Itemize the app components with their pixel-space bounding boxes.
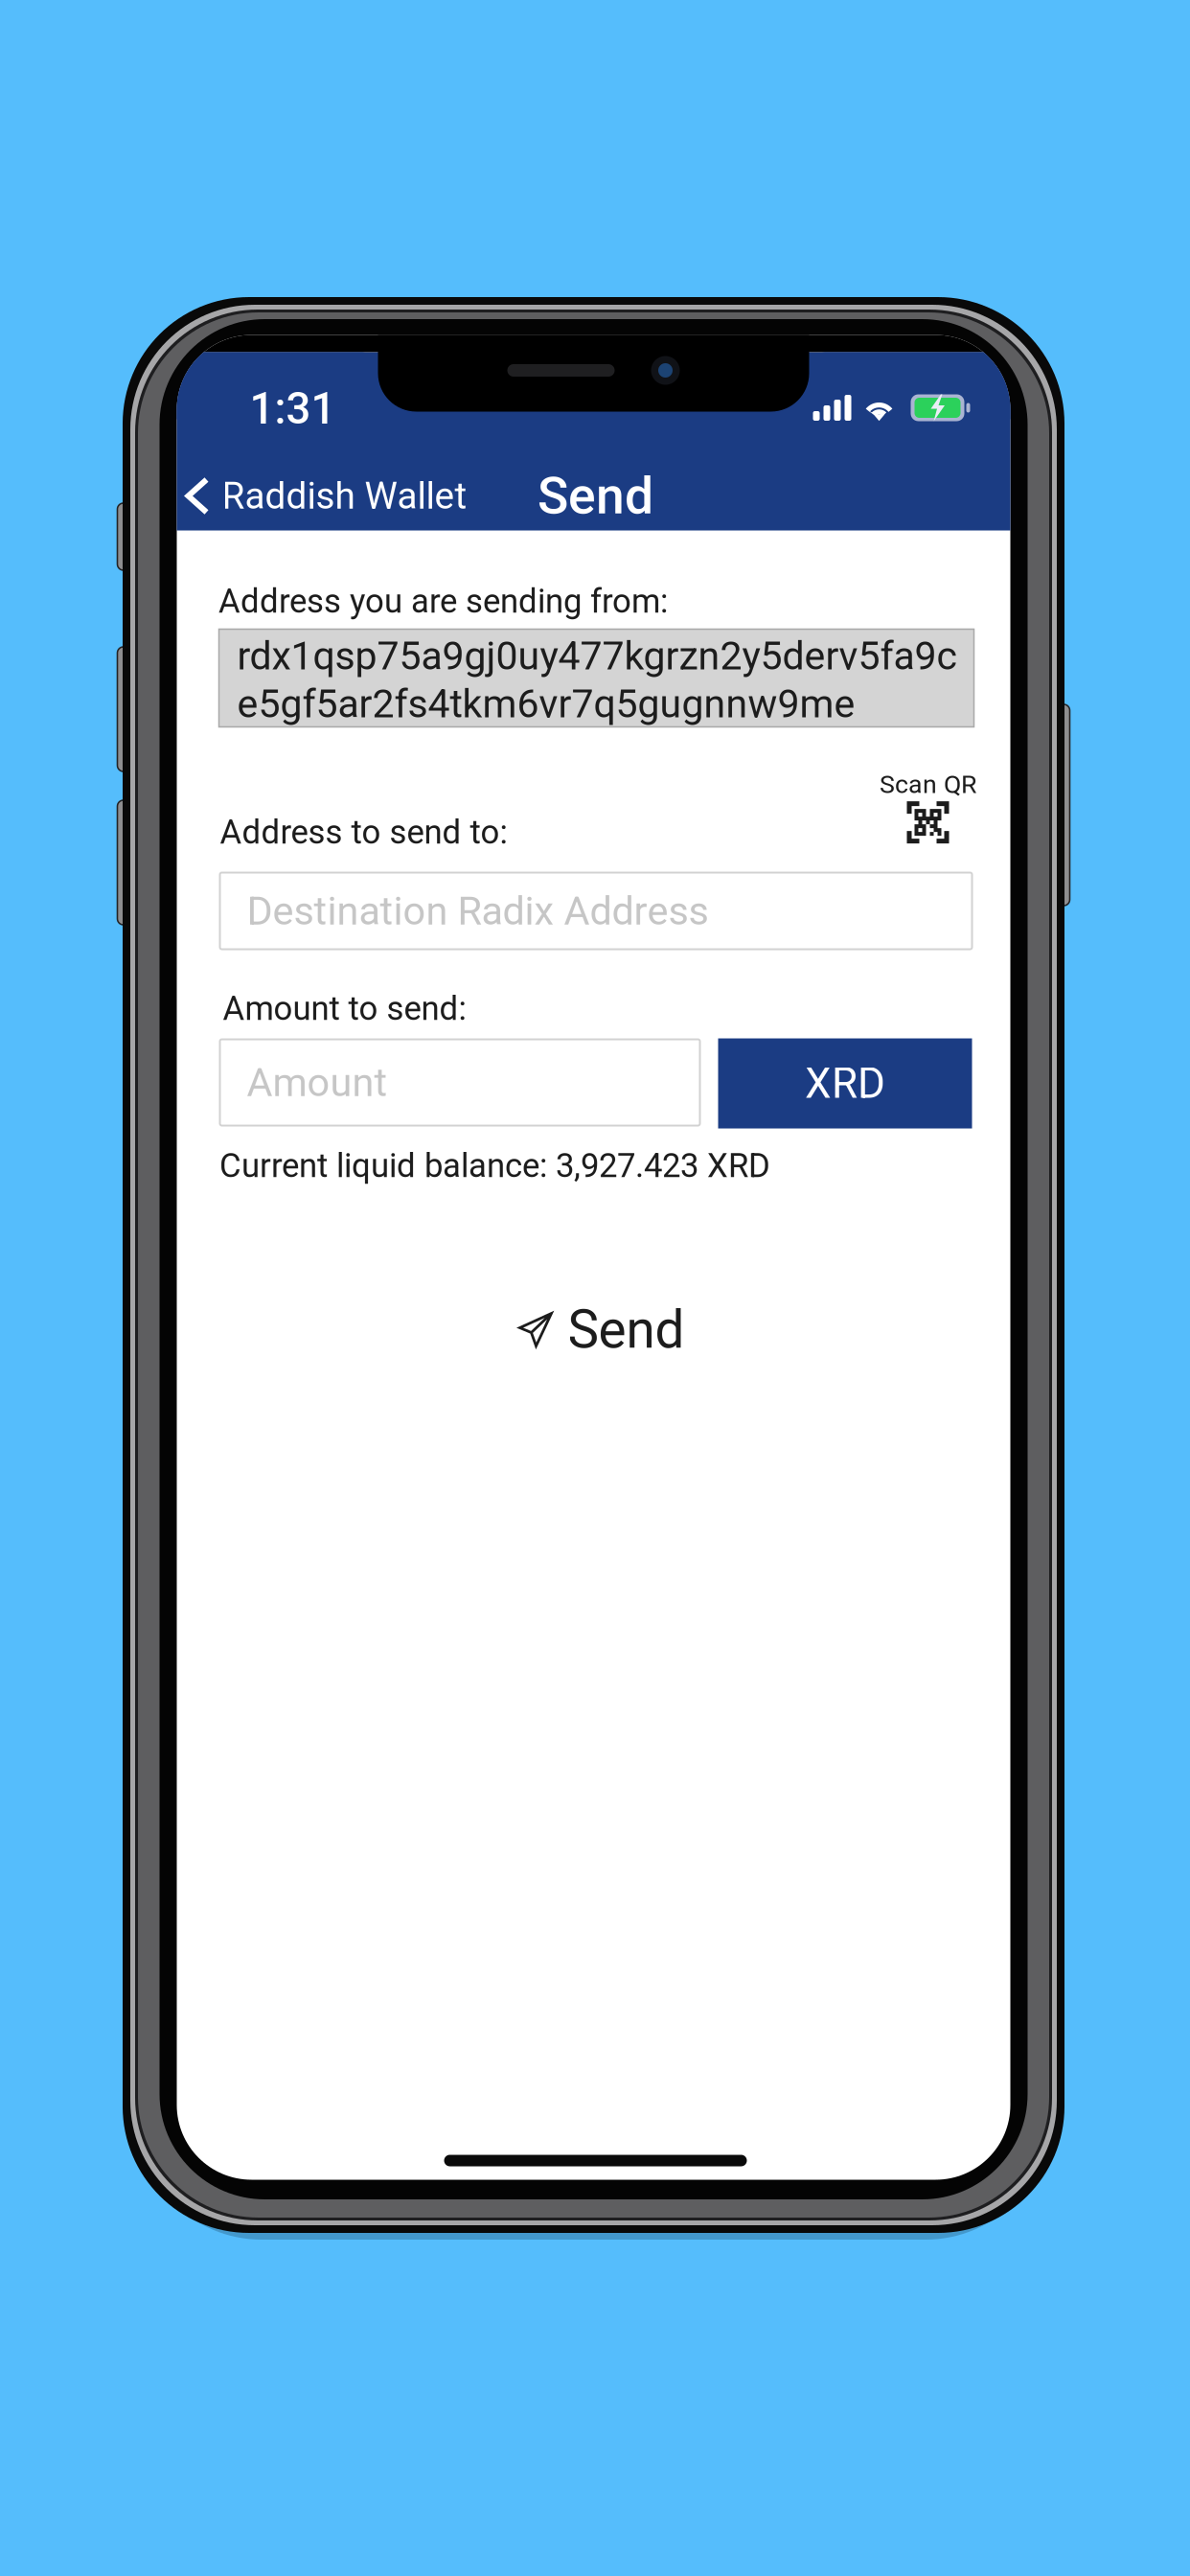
staticText: Destination Radix Address: [247, 888, 709, 934]
button[interactable]: Amount: [220, 1039, 700, 1126]
staticText: Amount: [247, 1059, 388, 1106]
button[interactable]: Send: [508, 1289, 694, 1370]
button[interactable]: Destination Radix Address: [220, 873, 972, 949]
staticText: Send: [568, 1299, 685, 1360]
staticText: Scan QR: [880, 769, 976, 799]
button[interactable]: Scan QR: [874, 766, 982, 847]
staticText: Send: [538, 466, 653, 526]
staticText: Address to send to:: [220, 813, 507, 852]
staticText: XRD: [805, 1059, 885, 1108]
staticText: e5gf5ar2fs4tkm6vr7q5gugnnw9me: [237, 681, 855, 727]
staticText: Amount to send:: [223, 989, 466, 1028]
button[interactable]: Raddish Wallet: [174, 457, 482, 535]
staticText: rdx1qsp75a9gj0uy477kgrzn2y5derv5fa9c: [237, 633, 957, 679]
staticText: Address you are sending from:: [218, 582, 668, 621]
staticText: 1:31: [250, 383, 336, 434]
staticText: Raddish Wallet: [222, 474, 467, 518]
staticText: Current liquid balance: 3,927.423 XRD: [219, 1146, 770, 1185]
button[interactable]: XRD: [718, 1038, 972, 1128]
